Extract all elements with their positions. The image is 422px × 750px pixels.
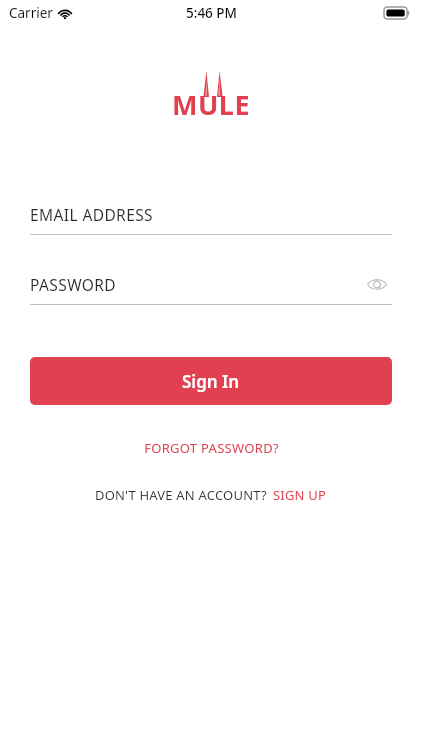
staticText: Sign In	[182, 370, 240, 393]
staticText: 5:46 PM	[186, 4, 237, 22]
staticText: PASSWORD	[30, 274, 117, 295]
button[interactable]: Sign In	[30, 357, 392, 405]
staticText: Carrier	[9, 4, 53, 22]
button[interactable]: FORGOT PASSWORD?	[136, 436, 287, 460]
staticText: DON'T HAVE AN ACCOUNT?	[95, 486, 267, 504]
staticText: EMAIL ADDRESS	[30, 204, 154, 225]
staticText: SIGN UP	[273, 486, 327, 504]
staticText: FORGOT PASSWORD?	[144, 439, 279, 457]
staticText: MULE	[172, 86, 251, 123]
button[interactable]: SIGN UP	[273, 486, 327, 504]
button[interactable]: Show password	[362, 271, 392, 297]
button[interactable]: PASSWORD	[30, 271, 392, 305]
button[interactable]: EMAIL ADDRESS	[30, 201, 392, 235]
